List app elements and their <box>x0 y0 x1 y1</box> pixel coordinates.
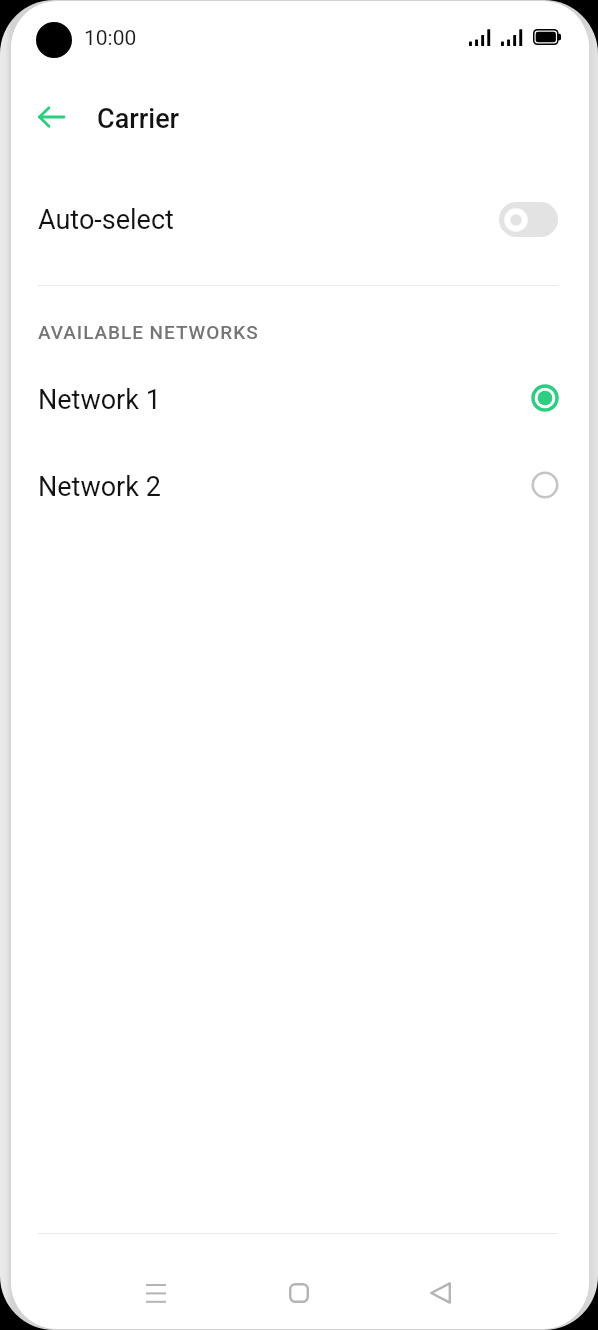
staticText: AVAILABLE NETWORKS <box>38 321 259 343</box>
staticText: Network 1 <box>38 384 161 416</box>
staticText: 10:00 <box>84 26 137 51</box>
staticText: Auto-select <box>38 204 174 236</box>
staticText: Network 2 <box>38 471 161 503</box>
button[interactable]: Network 1 <box>0 380 598 420</box>
button[interactable]: Home <box>271 1265 327 1321</box>
button[interactable]: Network 2 <box>0 467 598 507</box>
button[interactable]: Auto-select <box>0 192 598 247</box>
button[interactable]: Recent apps <box>128 1265 184 1321</box>
button[interactable]: Navigate back <box>27 93 75 141</box>
button[interactable]: Back <box>412 1265 468 1321</box>
staticText: Carrier <box>97 103 180 135</box>
button[interactable]: Auto-select network, off <box>499 202 558 237</box>
